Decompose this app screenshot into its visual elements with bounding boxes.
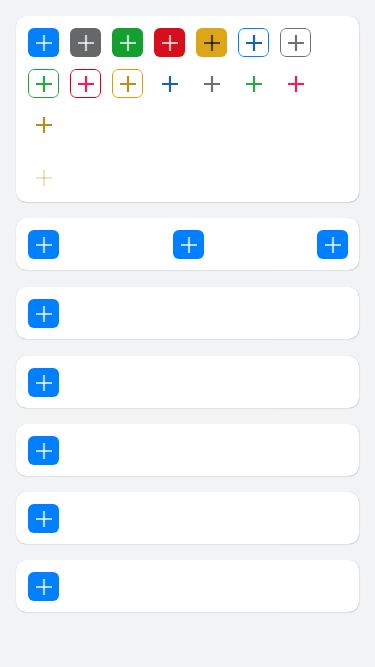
button[interactable]: Add	[70, 69, 101, 98]
button[interactable]: Add	[196, 28, 227, 57]
button[interactable]: Add	[238, 28, 269, 57]
button[interactable]: Add	[28, 299, 59, 328]
button[interactable]: Add	[280, 69, 311, 98]
button[interactable]: Add	[28, 163, 59, 192]
button[interactable]: Add	[70, 28, 101, 57]
button[interactable]: Add	[28, 230, 59, 259]
button[interactable]: Add	[196, 69, 227, 98]
button[interactable]: Add	[28, 368, 59, 397]
button[interactable]: Add	[154, 69, 185, 98]
button[interactable]: Add	[173, 230, 204, 259]
button[interactable]: Add	[28, 504, 59, 533]
button[interactable]: Add	[317, 230, 348, 259]
button[interactable]: Add	[238, 69, 269, 98]
button[interactable]: Add	[28, 110, 59, 139]
button[interactable]: Add	[28, 69, 59, 98]
button[interactable]: Add	[280, 28, 311, 57]
button[interactable]: Add	[28, 436, 59, 465]
button[interactable]: Add	[154, 28, 185, 57]
button[interactable]: Add	[28, 28, 59, 57]
button[interactable]: Add	[112, 28, 143, 57]
button[interactable]: Add	[112, 69, 143, 98]
button[interactable]: Add	[28, 572, 59, 601]
